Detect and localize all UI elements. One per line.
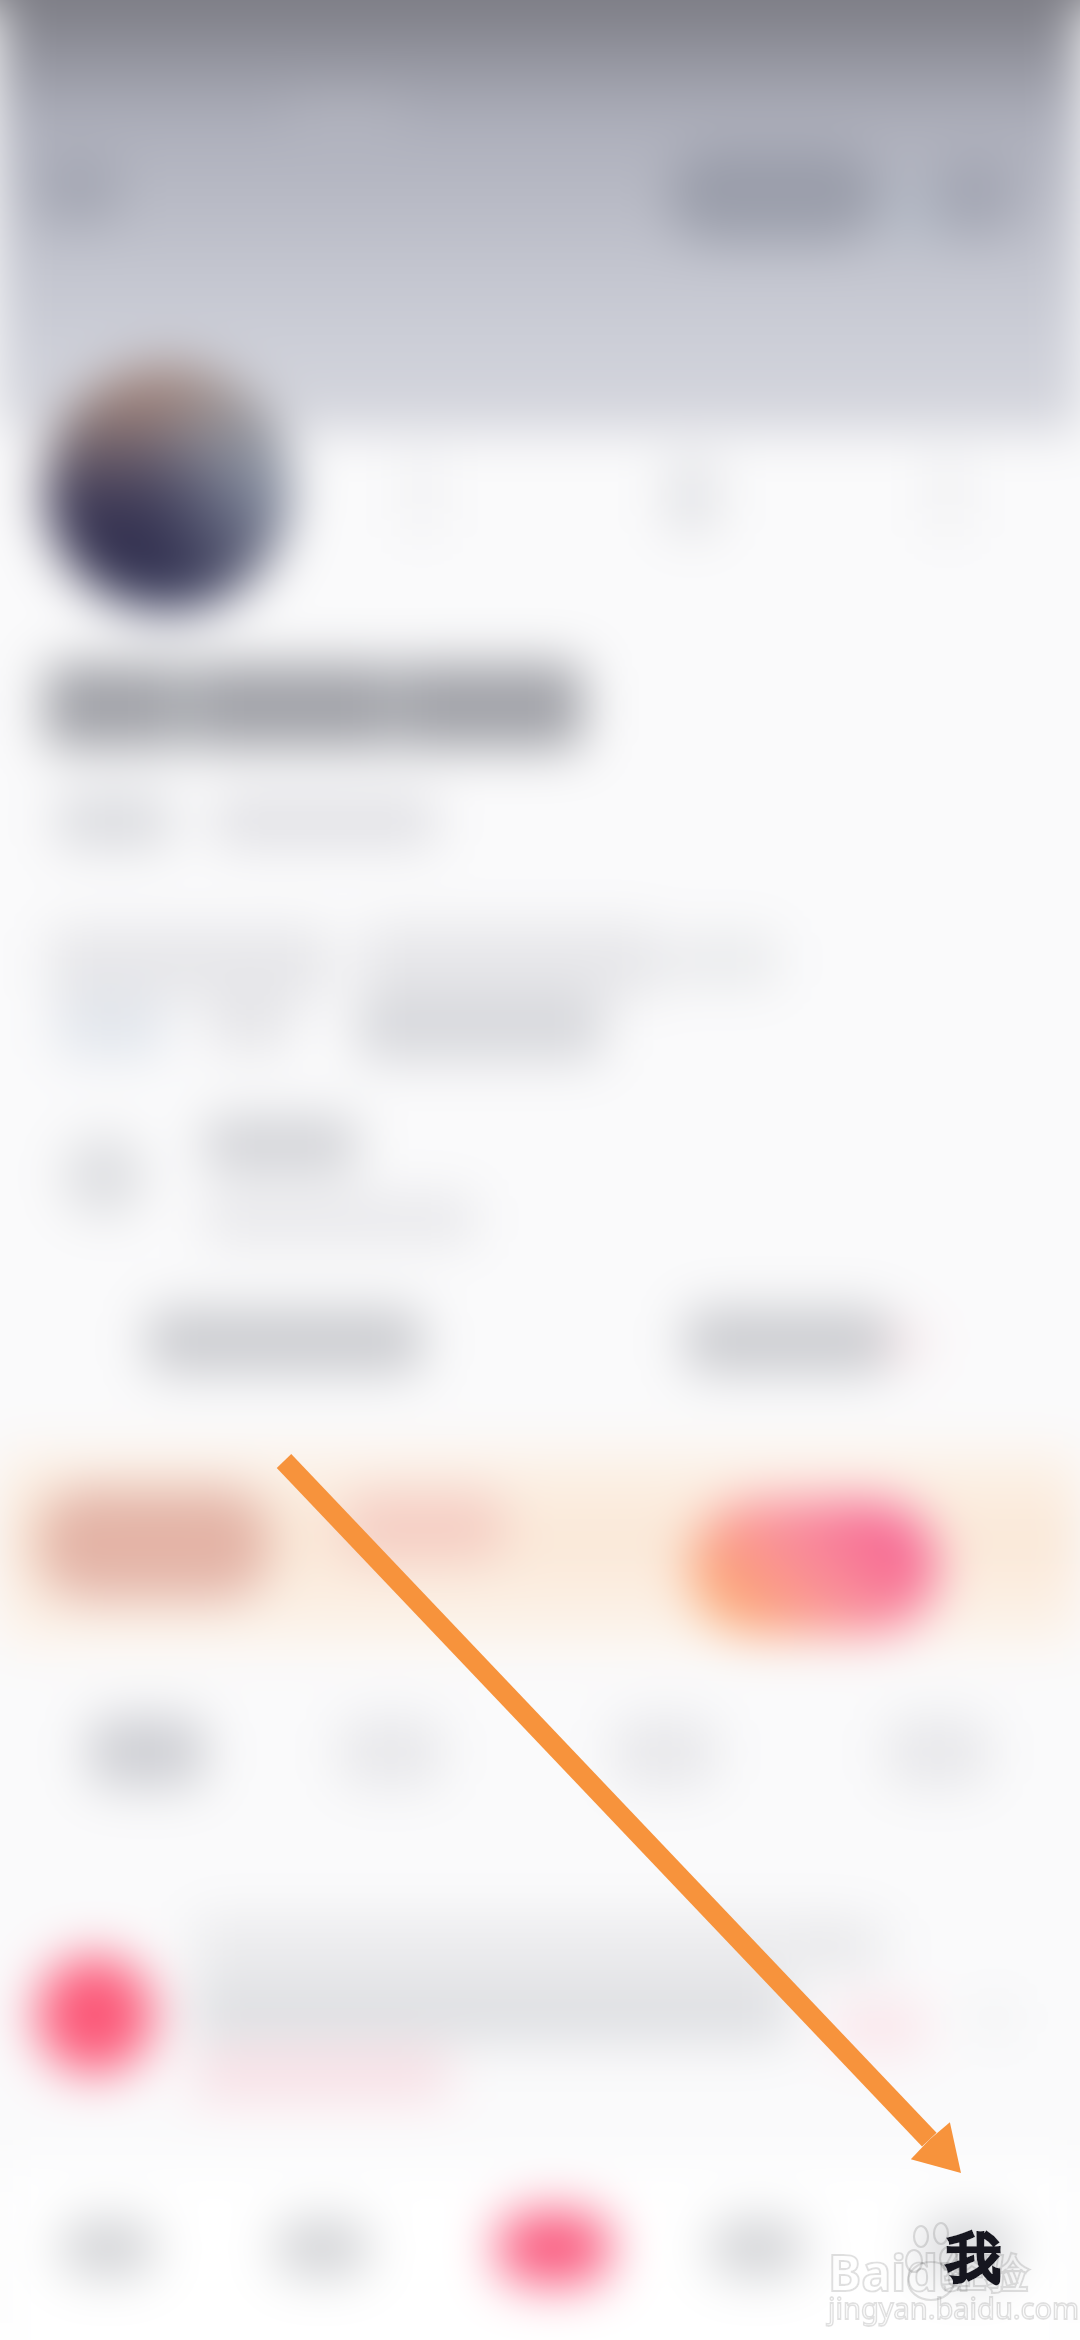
staticText: 经验 xyxy=(944,2248,1028,2301)
button[interactable]: Profile photo xyxy=(44,364,292,612)
button[interactable]: Tab 1 xyxy=(60,2220,156,2276)
button[interactable]: Join now xyxy=(690,1502,936,1634)
button[interactable]: Shortcut 1 xyxy=(88,1716,206,1788)
button[interactable]: Tab 3 xyxy=(496,2211,612,2285)
button[interactable]: Promo banner xyxy=(0,1448,1080,1648)
staticText: 我 xyxy=(946,2226,1000,2294)
staticText: Baidu xyxy=(828,2238,971,2306)
button[interactable]: Tab 4 xyxy=(709,2220,805,2276)
button[interactable]: Tab 5 xyxy=(920,2220,1016,2276)
button[interactable]: Tab 2 xyxy=(274,2220,370,2276)
staticText: jingyan.baidu.com xyxy=(828,2288,1080,2327)
